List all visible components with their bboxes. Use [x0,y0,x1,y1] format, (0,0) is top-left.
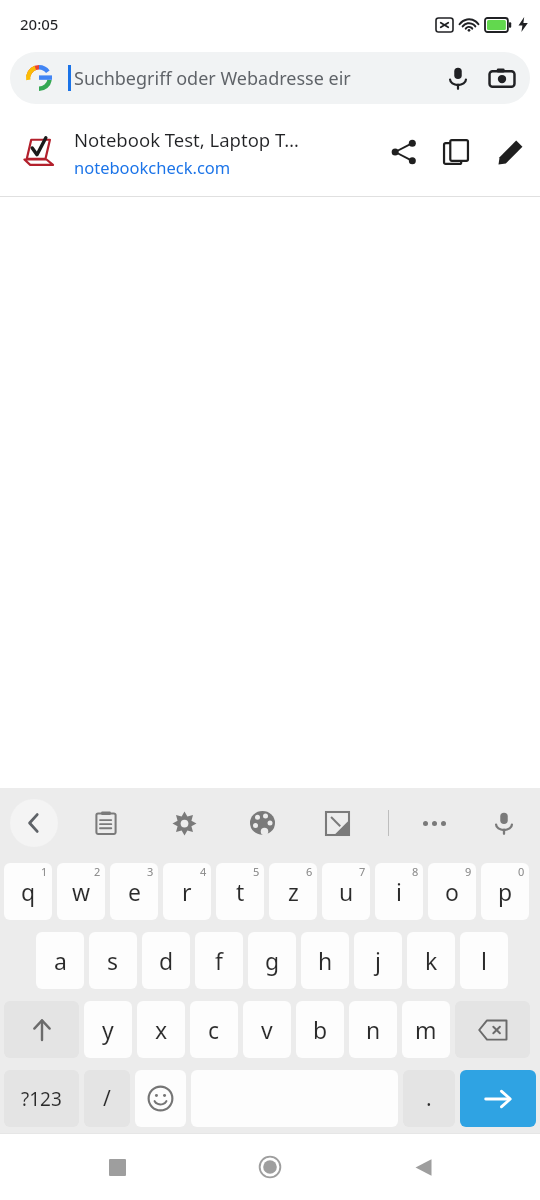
button[interactable]: x [137,1001,185,1058]
staticText: s [107,945,119,976]
button[interactable]: e [110,863,158,920]
button[interactable]: k [407,932,455,989]
button[interactable]: d [142,932,190,989]
staticText: p [498,876,513,907]
staticText: g [265,945,280,976]
button[interactable]: m [402,1001,450,1058]
staticText: l [481,945,487,976]
staticText: 2 [94,864,101,879]
staticText: t [236,876,245,907]
button[interactable]: y [84,1001,132,1058]
button[interactable]: i [375,863,423,920]
staticText: 6 [306,864,313,879]
staticText: 20:05 [20,14,59,34]
staticText: c [208,1014,220,1045]
button[interactable]: z [269,863,317,920]
staticText: . [426,1084,432,1113]
staticText: q [21,876,36,907]
button[interactable]: Settings [160,799,208,847]
staticText: 7 [359,864,366,879]
button[interactable]: / [84,1070,130,1127]
button[interactable]: . [403,1070,455,1127]
button[interactable]: Backspace [455,1001,530,1058]
button[interactable]: f [195,932,243,989]
staticText: 5 [253,864,260,879]
button[interactable]: Emoji [135,1070,186,1127]
staticText: 4 [200,864,207,879]
staticText: d [159,945,174,976]
button[interactable]: Suchbegriff oder Webadresse eir [10,52,530,104]
staticText: h [318,945,333,976]
button[interactable]: q [4,863,52,920]
staticText: y [102,1014,114,1045]
staticText: m [415,1014,437,1045]
staticText: b [313,1014,328,1045]
staticText: ?123 [21,1086,62,1112]
staticText: k [425,945,438,976]
button[interactable]: j [354,932,402,989]
button[interactable]: Voice search [436,56,480,100]
staticText: f [215,945,223,976]
staticText: a [54,945,67,976]
staticText: notebookcheck.com [74,156,231,178]
staticText: / [103,1084,111,1113]
button[interactable]: Shift [4,1001,79,1058]
button[interactable]: p [481,863,529,920]
staticText: e [128,876,141,907]
button[interactable]: Resize keyboard [313,799,361,847]
button[interactable]: Back [10,799,58,847]
button[interactable]: Share [378,126,430,178]
staticText: 8 [412,864,419,879]
button[interactable]: Voice input [480,799,528,847]
button[interactable]: Home [242,1139,298,1195]
staticText: i [396,876,402,907]
button[interactable]: Google Lens [480,56,524,100]
button[interactable]: o [428,863,476,920]
staticText: v [261,1014,273,1045]
staticText: r [182,876,192,907]
staticText: z [288,876,299,907]
button[interactable]: Notebook Test, Laptop T… [0,108,540,196]
staticText: w [72,876,91,907]
button[interactable]: More options [410,799,458,847]
button[interactable]: r [163,863,211,920]
staticText: n [366,1014,381,1045]
staticText: Notebook Test, Laptop T… [74,127,299,152]
button[interactable]: l [460,932,508,989]
button[interactable]: Recent apps [89,1139,145,1195]
button[interactable]: s [89,932,137,989]
staticText: Suchbegriff oder Webadresse eir [74,66,436,91]
button[interactable]: Back [395,1139,451,1195]
button[interactable]: h [301,932,349,989]
button[interactable]: u [322,863,370,920]
button[interactable]: Edit [482,123,540,181]
button[interactable]: c [190,1001,238,1058]
button[interactable]: g [248,932,296,989]
button[interactable]: Themes [238,799,286,847]
button[interactable]: b [296,1001,344,1058]
staticText: x [155,1014,168,1045]
button[interactable]: t [216,863,264,920]
button[interactable]: Go [460,1070,536,1127]
button[interactable]: w [57,863,105,920]
staticText: j [375,945,381,976]
staticText: u [339,876,354,907]
button[interactable]: Copy [430,126,482,178]
staticText: 3 [147,864,154,879]
staticText: 0 [518,864,525,879]
staticText: 9 [465,864,472,879]
button[interactable]: n [349,1001,397,1058]
button[interactable]: Clipboard [82,799,130,847]
button[interactable]: v [243,1001,291,1058]
button[interactable]: a [36,932,84,989]
button[interactable]: ?123 [4,1070,79,1127]
staticText: o [445,876,459,907]
staticText: 1 [41,864,48,879]
